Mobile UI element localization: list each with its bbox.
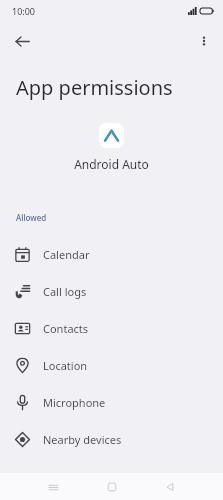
button[interactable]: Call logs bbox=[0, 273, 223, 310]
staticText: Location bbox=[43, 358, 88, 373]
staticText: Microphone bbox=[43, 395, 106, 410]
staticText: Call logs bbox=[43, 284, 87, 299]
button[interactable]: Home bbox=[99, 474, 125, 500]
button[interactable]: Back bbox=[6, 25, 38, 57]
button[interactable]: More options bbox=[189, 26, 219, 56]
button[interactable]: Contacts bbox=[0, 310, 223, 347]
staticText: Android Auto bbox=[0, 156, 223, 172]
button[interactable]: Calendar bbox=[0, 236, 223, 273]
staticText: Nearby devices bbox=[43, 432, 122, 447]
button[interactable]: Back bbox=[157, 474, 183, 500]
button[interactable]: Recent apps bbox=[40, 474, 66, 500]
button[interactable]: Nearby devices bbox=[0, 421, 223, 458]
button[interactable]: Microphone bbox=[0, 384, 223, 421]
staticText: App permissions bbox=[16, 74, 173, 101]
staticText: Contacts bbox=[43, 321, 89, 336]
staticText: Allowed bbox=[16, 212, 47, 223]
staticText: Calendar bbox=[43, 247, 90, 262]
button[interactable]: Location bbox=[0, 347, 223, 384]
staticText: 10:00 bbox=[12, 5, 36, 17]
